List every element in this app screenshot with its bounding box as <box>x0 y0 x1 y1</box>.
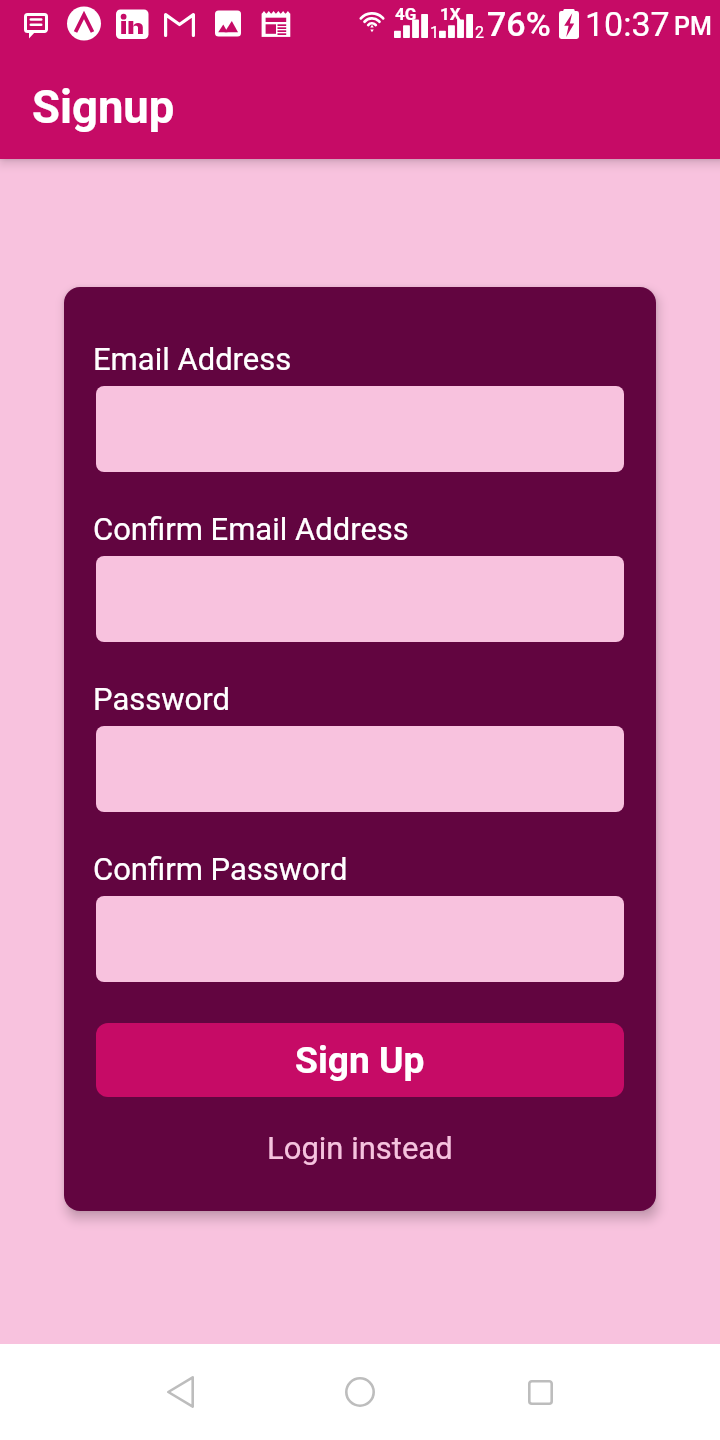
staticText: 4G <box>395 4 417 24</box>
staticText: 10:37 <box>585 4 670 44</box>
button[interactable] <box>96 386 624 472</box>
button[interactable] <box>96 556 624 642</box>
staticText: 2 <box>475 23 484 42</box>
button[interactable]: Recents <box>450 1344 630 1440</box>
button[interactable]: Sign Up <box>96 1023 624 1097</box>
staticText: Confirm Email Address <box>93 511 409 547</box>
staticText: 76% <box>487 4 551 44</box>
staticText: Email Address <box>93 341 292 377</box>
button[interactable]: Login instead <box>64 1120 656 1176</box>
button[interactable]: Home <box>270 1344 450 1440</box>
staticText: Sign Up <box>295 1038 425 1082</box>
staticText: 1X <box>440 4 461 24</box>
button[interactable] <box>96 726 624 812</box>
staticText: PM <box>674 12 712 41</box>
staticText: Login instead <box>267 1130 453 1166</box>
staticText: Signup <box>32 81 175 134</box>
staticText: Confirm Password <box>93 851 348 887</box>
staticText: 1 <box>430 23 439 42</box>
button[interactable]: Back <box>90 1344 270 1440</box>
staticText: Password <box>93 681 230 717</box>
button[interactable] <box>96 896 624 982</box>
